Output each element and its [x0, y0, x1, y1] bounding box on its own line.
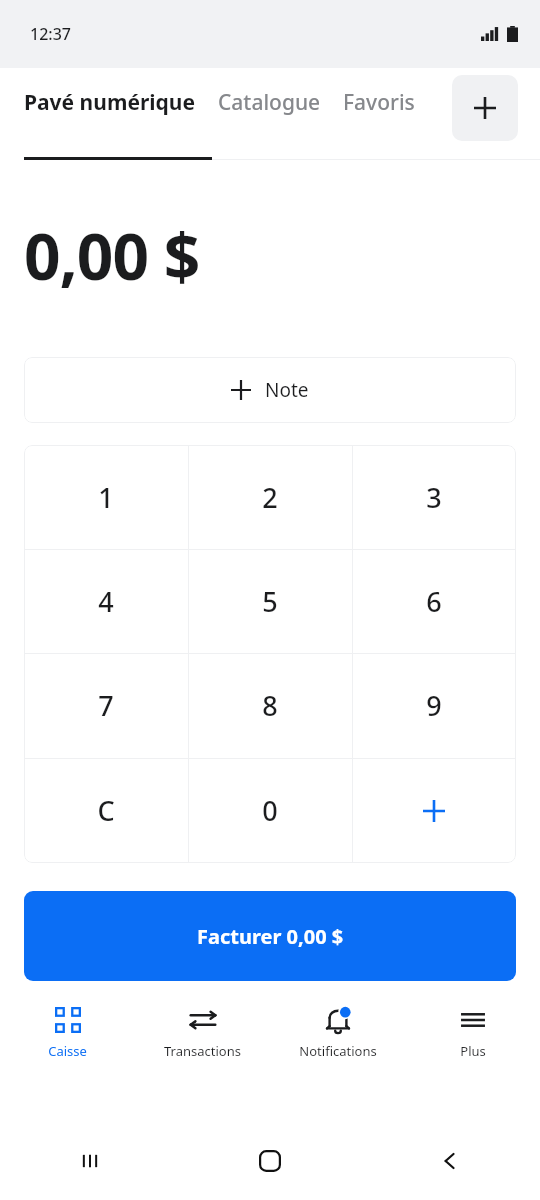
button[interactable]: Note — [24, 357, 516, 423]
staticText: Favoris — [343, 88, 415, 117]
button[interactable] — [352, 758, 516, 863]
staticText: 9 — [426, 687, 442, 724]
button[interactable]: Facturer 0,00 $ — [24, 891, 516, 981]
button[interactable]: 4 — [24, 549, 188, 653]
button[interactable]: 7 — [24, 653, 188, 758]
button[interactable]: Pavé numérique — [24, 88, 196, 117]
staticText: Plus — [460, 1042, 486, 1060]
button[interactable]: C — [24, 758, 188, 863]
staticText: Notifications — [299, 1042, 377, 1060]
button[interactable]: Favoris — [343, 88, 415, 117]
button[interactable]: 8 — [188, 653, 352, 758]
button[interactable]: Plus — [405, 995, 540, 1067]
button[interactable]: 3 — [352, 445, 516, 549]
staticText: Catalogue — [218, 88, 321, 117]
staticText: 12:37 — [30, 23, 71, 45]
staticText: 3 — [426, 479, 442, 516]
staticText: 1 — [98, 479, 114, 516]
button[interactable]: 2 — [188, 445, 352, 549]
staticText: Pavé numérique — [24, 88, 196, 117]
staticText: 0 — [262, 792, 278, 829]
staticText: Transactions — [164, 1042, 241, 1060]
button[interactable]: Notifications — [270, 995, 405, 1067]
button[interactable]: Catalogue — [218, 88, 321, 117]
button[interactable]: Back — [360, 1122, 540, 1200]
staticText: 8 — [262, 687, 278, 724]
staticText: C — [97, 792, 115, 829]
staticText: 0,00 $ — [24, 212, 200, 299]
staticText: 6 — [426, 583, 442, 620]
staticText: 5 — [262, 583, 278, 620]
button[interactable]: 9 — [352, 653, 516, 758]
button[interactable]: 6 — [352, 549, 516, 653]
button[interactable]: Caisse — [0, 995, 135, 1067]
button[interactable]: 5 — [188, 549, 352, 653]
staticText: 2 — [262, 479, 278, 516]
button[interactable]: Recents — [0, 1122, 180, 1200]
staticText: 4 — [98, 583, 114, 620]
button[interactable]: Home — [180, 1122, 360, 1200]
staticText: Caisse — [48, 1042, 87, 1060]
button[interactable]: 0 — [188, 758, 352, 863]
button[interactable]: 1 — [24, 445, 188, 549]
staticText: 7 — [98, 687, 114, 724]
button[interactable]: Ajouter — [452, 75, 518, 141]
staticText: Facturer 0,00 $ — [197, 923, 344, 950]
button[interactable]: Transactions — [135, 995, 270, 1067]
staticText: Note — [265, 377, 309, 403]
